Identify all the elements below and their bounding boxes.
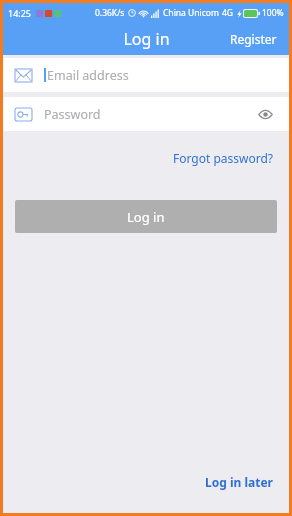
button[interactable]: Password bbox=[3, 97, 289, 131]
staticText: 0.36K/s bbox=[95, 7, 125, 19]
staticText: Register bbox=[230, 31, 277, 47]
staticText: Log in later bbox=[205, 474, 273, 490]
button[interactable]: Show password bbox=[254, 105, 277, 124]
staticText: Password bbox=[44, 106, 101, 123]
button[interactable]: Log in later bbox=[203, 471, 275, 493]
staticText: 4G bbox=[222, 7, 234, 19]
staticText: Forgot password? bbox=[173, 150, 274, 166]
staticText: Log in bbox=[123, 28, 170, 50]
staticText: China Unicom bbox=[163, 7, 219, 19]
staticText: 100% bbox=[262, 7, 284, 19]
staticText: Email address bbox=[47, 67, 129, 84]
button[interactable]: Forgot password? bbox=[171, 147, 276, 169]
staticText: Log in bbox=[127, 208, 165, 226]
button[interactable]: Register bbox=[218, 25, 289, 53]
button[interactable]: Log in bbox=[15, 200, 277, 233]
staticText: 14:25 bbox=[8, 7, 32, 19]
button[interactable]: Email address bbox=[3, 58, 289, 92]
